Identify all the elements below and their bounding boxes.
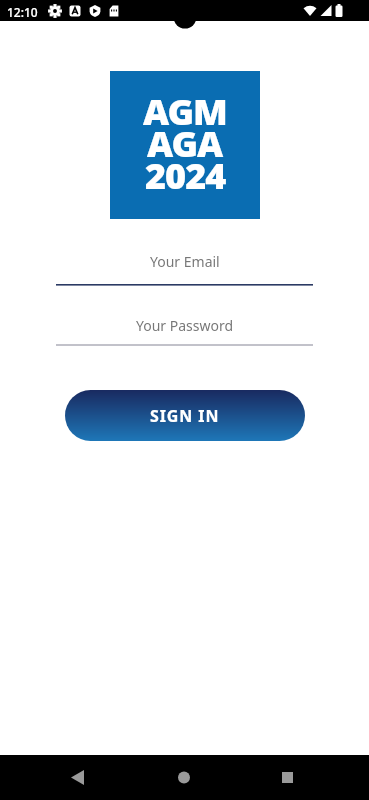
staticText: 12:10	[7, 4, 38, 20]
staticText: 2024	[145, 151, 226, 200]
staticText: AGA	[147, 119, 223, 168]
staticText: AGM	[143, 87, 227, 136]
button[interactable]: SIGN IN	[65, 390, 305, 441]
button[interactable]: Your Password	[56, 306, 313, 344]
staticText: Your Password	[136, 316, 234, 335]
staticText: SIGN IN	[150, 405, 220, 427]
button[interactable]: Your Email	[56, 242, 313, 280]
staticText: Your Email	[150, 252, 220, 271]
